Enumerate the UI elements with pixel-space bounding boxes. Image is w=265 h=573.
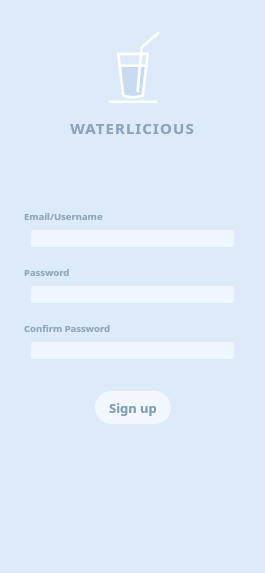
button[interactable]: Sign up: [95, 391, 171, 424]
staticText: Confirm Password: [24, 322, 110, 335]
staticText: Sign up: [109, 399, 157, 417]
staticText: Password: [24, 266, 70, 279]
staticText: Email/Username: [24, 210, 103, 223]
staticText: WATERLICIOUS: [70, 118, 195, 138]
other: Waterlicious logo: [97, 36, 169, 106]
